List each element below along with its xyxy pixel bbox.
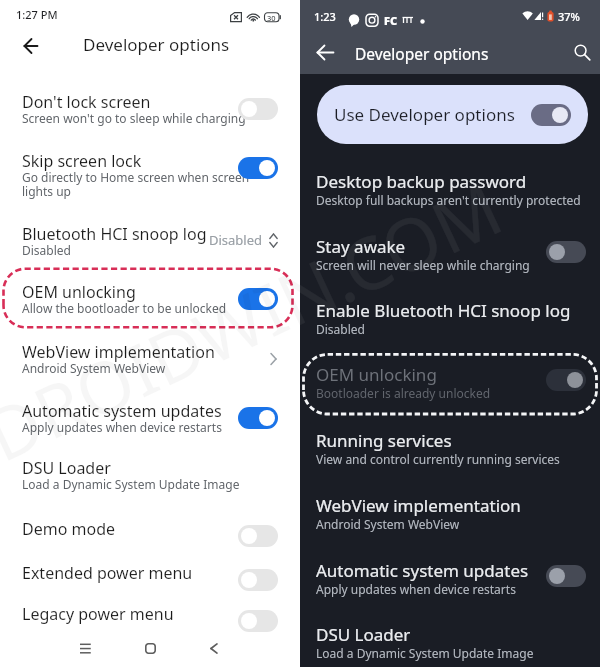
staticText: Automatic system updates xyxy=(316,559,529,582)
staticText: FC xyxy=(384,13,398,28)
staticText: 1:23 xyxy=(314,9,336,24)
button[interactable]: Back xyxy=(196,630,232,666)
button[interactable]: Search xyxy=(564,34,600,70)
button[interactable]: Switch on xyxy=(531,104,571,126)
button[interactable]: Switch off xyxy=(238,569,278,591)
button[interactable]: Switch off xyxy=(546,565,586,587)
staticText: Desktop backup password xyxy=(316,170,527,193)
staticText: Skip screen lock xyxy=(22,150,142,172)
button[interactable]: Demo mode xyxy=(0,512,300,542)
staticText: 37% xyxy=(558,9,580,24)
button[interactable]: DSU Loader xyxy=(0,451,300,497)
button[interactable]: WebView implementation xyxy=(0,335,300,381)
staticText: Bootloader is already unlocked xyxy=(316,385,491,401)
staticText: Developer options xyxy=(83,33,230,56)
staticText: Extended power menu xyxy=(22,562,193,584)
staticText: Disabled xyxy=(209,231,263,249)
button[interactable]: Switch on xyxy=(238,407,278,429)
button[interactable]: Automatic system updates xyxy=(0,394,300,440)
staticText: Don't lock screen xyxy=(22,91,151,113)
staticText: 1:27 PM xyxy=(16,7,58,22)
staticText: Legacy power menu xyxy=(22,603,174,625)
button[interactable]: WebView implementation xyxy=(300,488,600,536)
staticText: Screen will never sleep while charging xyxy=(316,257,530,273)
staticText: WebView implementation xyxy=(316,494,521,517)
staticText: WebView implementation xyxy=(22,341,215,363)
staticText: Stay awake xyxy=(316,235,406,258)
button[interactable]: Home xyxy=(132,630,168,666)
staticText: Screen won't go to sleep while charging xyxy=(22,110,246,126)
button[interactable]: Switch off xyxy=(238,610,278,632)
staticText: Automatic system updates xyxy=(22,400,222,422)
button[interactable]: Desktop backup password xyxy=(300,164,600,212)
button[interactable]: Bluetooth HCI snoop log xyxy=(0,217,300,263)
staticText: Android System WebView xyxy=(22,360,166,376)
staticText: Disabled xyxy=(316,321,365,337)
button[interactable]: Stay awake xyxy=(300,229,600,277)
button[interactable]: Switch off xyxy=(238,98,278,120)
button[interactable]: OEM unlocking xyxy=(300,357,600,405)
button[interactable]: Back xyxy=(307,34,343,70)
button[interactable]: Extended power menu xyxy=(0,556,300,586)
staticText: Android System WebView xyxy=(316,516,460,532)
button[interactable]: Back xyxy=(11,26,51,66)
staticText: Running services xyxy=(316,429,452,452)
staticText: Demo mode xyxy=(22,518,116,540)
staticText: Allow the bootloader to be unlocked xyxy=(22,300,227,316)
button[interactable]: Skip screen lock xyxy=(0,144,300,190)
button[interactable]: DSU Loader xyxy=(300,617,600,665)
button[interactable]: Running services xyxy=(300,423,600,471)
staticText: 30 xyxy=(267,13,276,23)
staticText: Desktop full backups aren't currently pr… xyxy=(316,192,581,208)
staticText: Developer options xyxy=(355,43,489,64)
button[interactable]: Enable Bluetooth HCI snoop log xyxy=(300,293,600,341)
button[interactable]: Don't lock screen xyxy=(0,85,300,131)
button[interactable]: Use Developer options xyxy=(317,85,588,144)
staticText: Load a Dynamic System Update Image xyxy=(22,476,240,492)
button[interactable]: Switch on xyxy=(238,157,278,179)
button[interactable]: Switch on xyxy=(546,369,586,391)
button[interactable]: Switch on xyxy=(238,288,278,310)
staticText: DSU Loader xyxy=(22,457,111,479)
staticText: Apply updates when device restarts xyxy=(316,581,516,597)
button[interactable]: Recent apps xyxy=(67,630,103,666)
staticText: Apply updates when device restarts xyxy=(22,419,222,435)
button[interactable]: Switch off xyxy=(238,525,278,547)
staticText: Bluetooth HCI snoop log xyxy=(22,223,207,245)
staticText: Disabled xyxy=(22,242,71,258)
staticText: OEM unlocking xyxy=(316,363,437,386)
button[interactable]: Legacy power menu xyxy=(0,597,300,627)
staticText: DSU Loader xyxy=(316,623,411,646)
staticText: Enable Bluetooth HCI snoop log xyxy=(316,299,571,322)
staticText: Go directly to Home screen when screen l… xyxy=(22,169,250,200)
staticText: Load a Dynamic System Update Image xyxy=(316,645,534,661)
staticText: View and control currently running servi… xyxy=(316,451,560,467)
button[interactable]: OEM unlocking xyxy=(0,275,300,321)
button[interactable]: Automatic system updates xyxy=(300,553,600,601)
staticText: Use Developer options xyxy=(334,103,515,126)
staticText: OEM unlocking xyxy=(22,281,136,303)
button[interactable]: Switch off xyxy=(546,241,586,263)
